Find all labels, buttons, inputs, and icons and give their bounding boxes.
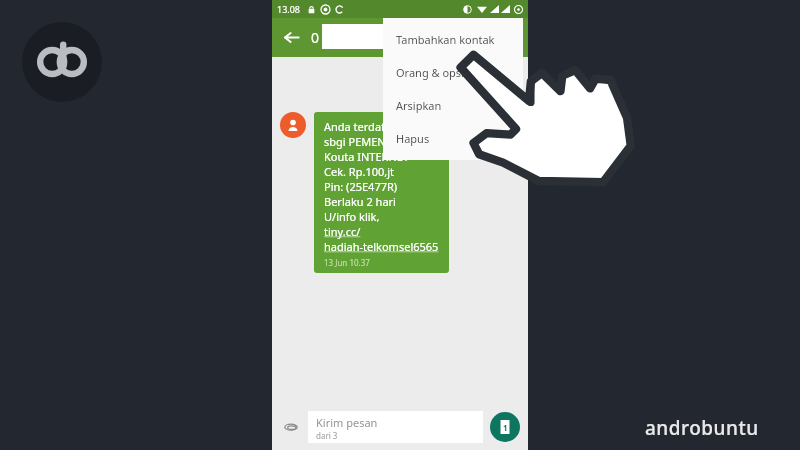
staticText: hadiah-telkomsel6565 — [324, 239, 439, 254]
staticText: androbuntu — [645, 415, 759, 441]
button[interactable]: Anda terdaftar — [314, 112, 449, 273]
staticText: Kirim pesan — [316, 415, 378, 430]
staticText: Orang & opsi — [396, 65, 464, 80]
staticText: Tambahkan kontak — [396, 32, 495, 47]
staticText: Hapus — [396, 131, 430, 146]
staticText: Arsipkan — [396, 98, 442, 113]
staticText: 0 — [311, 28, 320, 47]
staticText: 13 Jun 10.37 — [324, 257, 370, 268]
button[interactable]: Hapus — [383, 122, 523, 155]
staticText: Berlaku 2 hari — [324, 194, 396, 209]
staticText: Pin: (25E477R) — [324, 179, 398, 194]
staticText: sbgi PEMENANG — [324, 134, 410, 149]
button[interactable]: Kirim pesan — [308, 411, 483, 443]
staticText: 13.08 — [277, 3, 301, 15]
staticText: Kouta INTERNET — [324, 149, 410, 164]
staticText: Anda terdaftar — [324, 119, 400, 134]
staticText: dari 3 — [316, 430, 338, 441]
button[interactable]: Orang & opsi — [383, 56, 523, 89]
button[interactable]: Tambahkan kontak — [383, 23, 523, 56]
staticText: tiny.cc/ — [324, 224, 361, 239]
button[interactable]: Back — [272, 18, 311, 57]
staticText: U/info klik, — [324, 209, 380, 224]
staticText: Cek. Rp.100,jt — [324, 164, 395, 179]
button[interactable]: Arsipkan — [383, 89, 523, 122]
button[interactable]: Attach — [280, 416, 302, 438]
staticText: 1 — [503, 422, 508, 433]
button[interactable]: Send — [490, 412, 520, 442]
